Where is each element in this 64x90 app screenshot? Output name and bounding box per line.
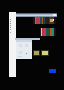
button[interactable]	[9, 12, 16, 77]
button[interactable]	[16, 40, 32, 59]
